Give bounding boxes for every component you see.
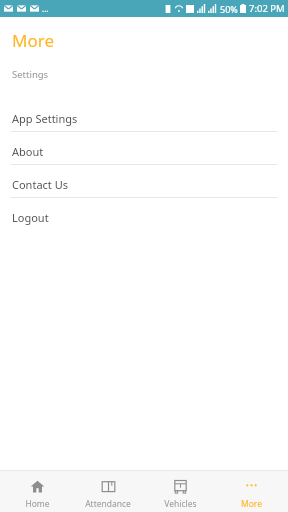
staticText: About [12, 144, 44, 159]
button[interactable]: About [0, 138, 288, 171]
staticText: App Settings [12, 111, 78, 126]
staticText: Logout [12, 210, 49, 225]
staticText: 7:02 PM [249, 2, 285, 15]
button[interactable]: App Settings [0, 105, 288, 138]
button[interactable]: More [216, 471, 286, 512]
staticText: Vehicles [164, 498, 197, 510]
staticText: More [241, 498, 262, 510]
staticText: Attendance [85, 498, 131, 510]
staticText: Settings [12, 68, 49, 81]
button[interactable]: Home [2, 471, 72, 512]
staticText: More [12, 29, 54, 52]
button[interactable]: Logout [0, 204, 288, 236]
button[interactable]: Contact Us [0, 171, 288, 204]
staticText: 50% [220, 3, 238, 15]
button[interactable]: Vehicles [145, 471, 215, 512]
staticText: Contact Us [12, 177, 68, 192]
staticText: Home [25, 498, 50, 510]
staticText: ... [42, 3, 49, 14]
button[interactable]: Attendance [73, 471, 143, 512]
